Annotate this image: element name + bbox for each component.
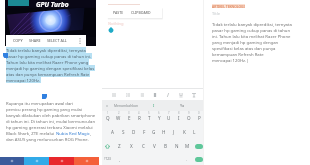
staticText: GPU Turbo (36, 0, 69, 9)
button[interactable]: 1 (102, 111, 113, 125)
button[interactable]: Share on Facebook (0, 157, 24, 165)
staticText: 7 (168, 111, 170, 115)
button[interactable]: L (189, 125, 199, 139)
staticText: R (138, 115, 141, 121)
staticText: C (142, 143, 145, 149)
staticText: W (116, 115, 121, 121)
staticText: Nothing (108, 21, 124, 26)
staticText: B (164, 143, 167, 149)
button[interactable]: , (113, 153, 127, 165)
button[interactable]: H (159, 125, 169, 139)
staticText: T (148, 115, 151, 121)
staticText: X (130, 143, 133, 149)
staticText: kemampuan Refresh Rate (212, 51, 264, 57)
button[interactable]: M (182, 139, 193, 153)
staticText: dan ASUS yang meluncurkan ROG Phone. (6, 136, 89, 142)
button[interactable]: Share on Reddit (74, 157, 99, 165)
staticText: Tahun lalu kita melihat Razer Phone yang (6, 59, 89, 65)
staticText: SELECT ALL (47, 38, 67, 43)
staticText: ?123 (104, 157, 111, 161)
button[interactable]: Share on Pinterest (49, 157, 74, 165)
button[interactable]: S (118, 125, 129, 139)
button[interactable]: Format 3 (148, 89, 161, 100)
button[interactable]: SHARE (29, 38, 41, 43)
button[interactable]: Backspace (193, 139, 204, 153)
button[interactable]: Enter (193, 153, 204, 165)
button[interactable]: K (179, 125, 189, 139)
button[interactable]: Ya (164, 100, 200, 111)
staticText: yang menjadi hp gaming dengan (212, 39, 279, 45)
button[interactable]: D (129, 125, 139, 139)
button[interactable]: G (149, 125, 159, 139)
button[interactable]: SELECT ALL (47, 38, 67, 43)
staticText: di tahun ini. Di tahun ini, mulai bermun… (6, 118, 96, 124)
button[interactable]: Format 4 (161, 89, 174, 100)
button[interactable]: Format 0 (107, 89, 121, 100)
staticText: 4 (138, 111, 140, 115)
staticText: L (193, 129, 196, 135)
button[interactable]: Share on Twitter (24, 157, 49, 165)
button[interactable]: I (144, 100, 164, 111)
staticText: menjadi hp gaming dengan spesifikasi kel… (6, 65, 95, 71)
button[interactable]: Z (113, 139, 125, 153)
button[interactable]: 9 (184, 111, 194, 125)
staticText: CLIPBOARD (131, 10, 151, 15)
button[interactable]: Format 6 (187, 89, 200, 100)
staticText: 0 (198, 111, 200, 115)
button[interactable]: Shift (102, 139, 113, 153)
staticText: V (153, 143, 156, 149)
staticText: J (173, 129, 175, 135)
staticText: I (153, 103, 155, 108)
button[interactable]: F (139, 125, 149, 139)
button[interactable]: C (137, 139, 149, 153)
button[interactable]: Format 2 (135, 89, 148, 100)
staticText: S (122, 129, 125, 135)
staticText: mencapai 120Hz.| (212, 57, 249, 63)
button[interactable]: 0 (194, 111, 204, 125)
staticText: atas dan punya kemampuan Refresh Rate (6, 71, 90, 77)
button[interactable]: 2 (113, 111, 124, 125)
staticText: O (187, 115, 191, 121)
button[interactable]: More options (75, 35, 84, 46)
button[interactable]: X (125, 139, 137, 153)
button[interactable]: 6 (154, 111, 164, 125)
staticText: . (186, 157, 188, 162)
staticText: pasar hp gaming cukup panas di tahun (212, 27, 291, 33)
button[interactable]: COPY (6, 35, 86, 46)
button[interactable]: 5 (144, 111, 154, 125)
button[interactable]: Voice input (105, 104, 109, 108)
button[interactable]: 8 (174, 111, 184, 125)
staticText: COPY (13, 38, 23, 43)
button[interactable]: 7 (164, 111, 174, 125)
button[interactable]: Format 1 (121, 89, 135, 100)
button[interactable]: A (107, 125, 118, 139)
button[interactable]: COPY (13, 38, 23, 43)
staticText: ARTIKEL TEKNOLOGI (212, 4, 245, 8)
button[interactable]: Format 5 (174, 89, 187, 100)
staticText: G (152, 129, 156, 135)
button[interactable]: PASTE (107, 7, 162, 18)
button[interactable]: V (149, 139, 160, 153)
staticText: K (183, 129, 186, 135)
staticText: mencapai 120Hz. (6, 77, 41, 83)
staticText: Black Shark, ZTE melalui (6, 130, 56, 136)
button[interactable]: 3 (124, 111, 134, 125)
staticText: , (90, 130, 92, 136)
staticText: 2 (118, 111, 120, 115)
staticText: pasar hp gaming cukup panas di tahun ini… (6, 53, 92, 59)
staticText: , (119, 157, 121, 162)
staticText: E (128, 115, 131, 121)
button[interactable]: Menambahkan (109, 100, 144, 111)
button[interactable]: N (171, 139, 182, 153)
staticText: 3 (128, 111, 130, 115)
staticText: Ya (180, 103, 185, 108)
button[interactable]: B (160, 139, 171, 153)
button[interactable]: J (169, 125, 179, 139)
staticText: Nubia Red Magic (56, 130, 90, 136)
button[interactable]: ?123 (102, 153, 113, 165)
staticText: hp gaming generasi terbaru Xiaomi melalu… (6, 124, 93, 130)
staticText: H (162, 129, 166, 135)
button[interactable]: 4 (134, 111, 144, 125)
